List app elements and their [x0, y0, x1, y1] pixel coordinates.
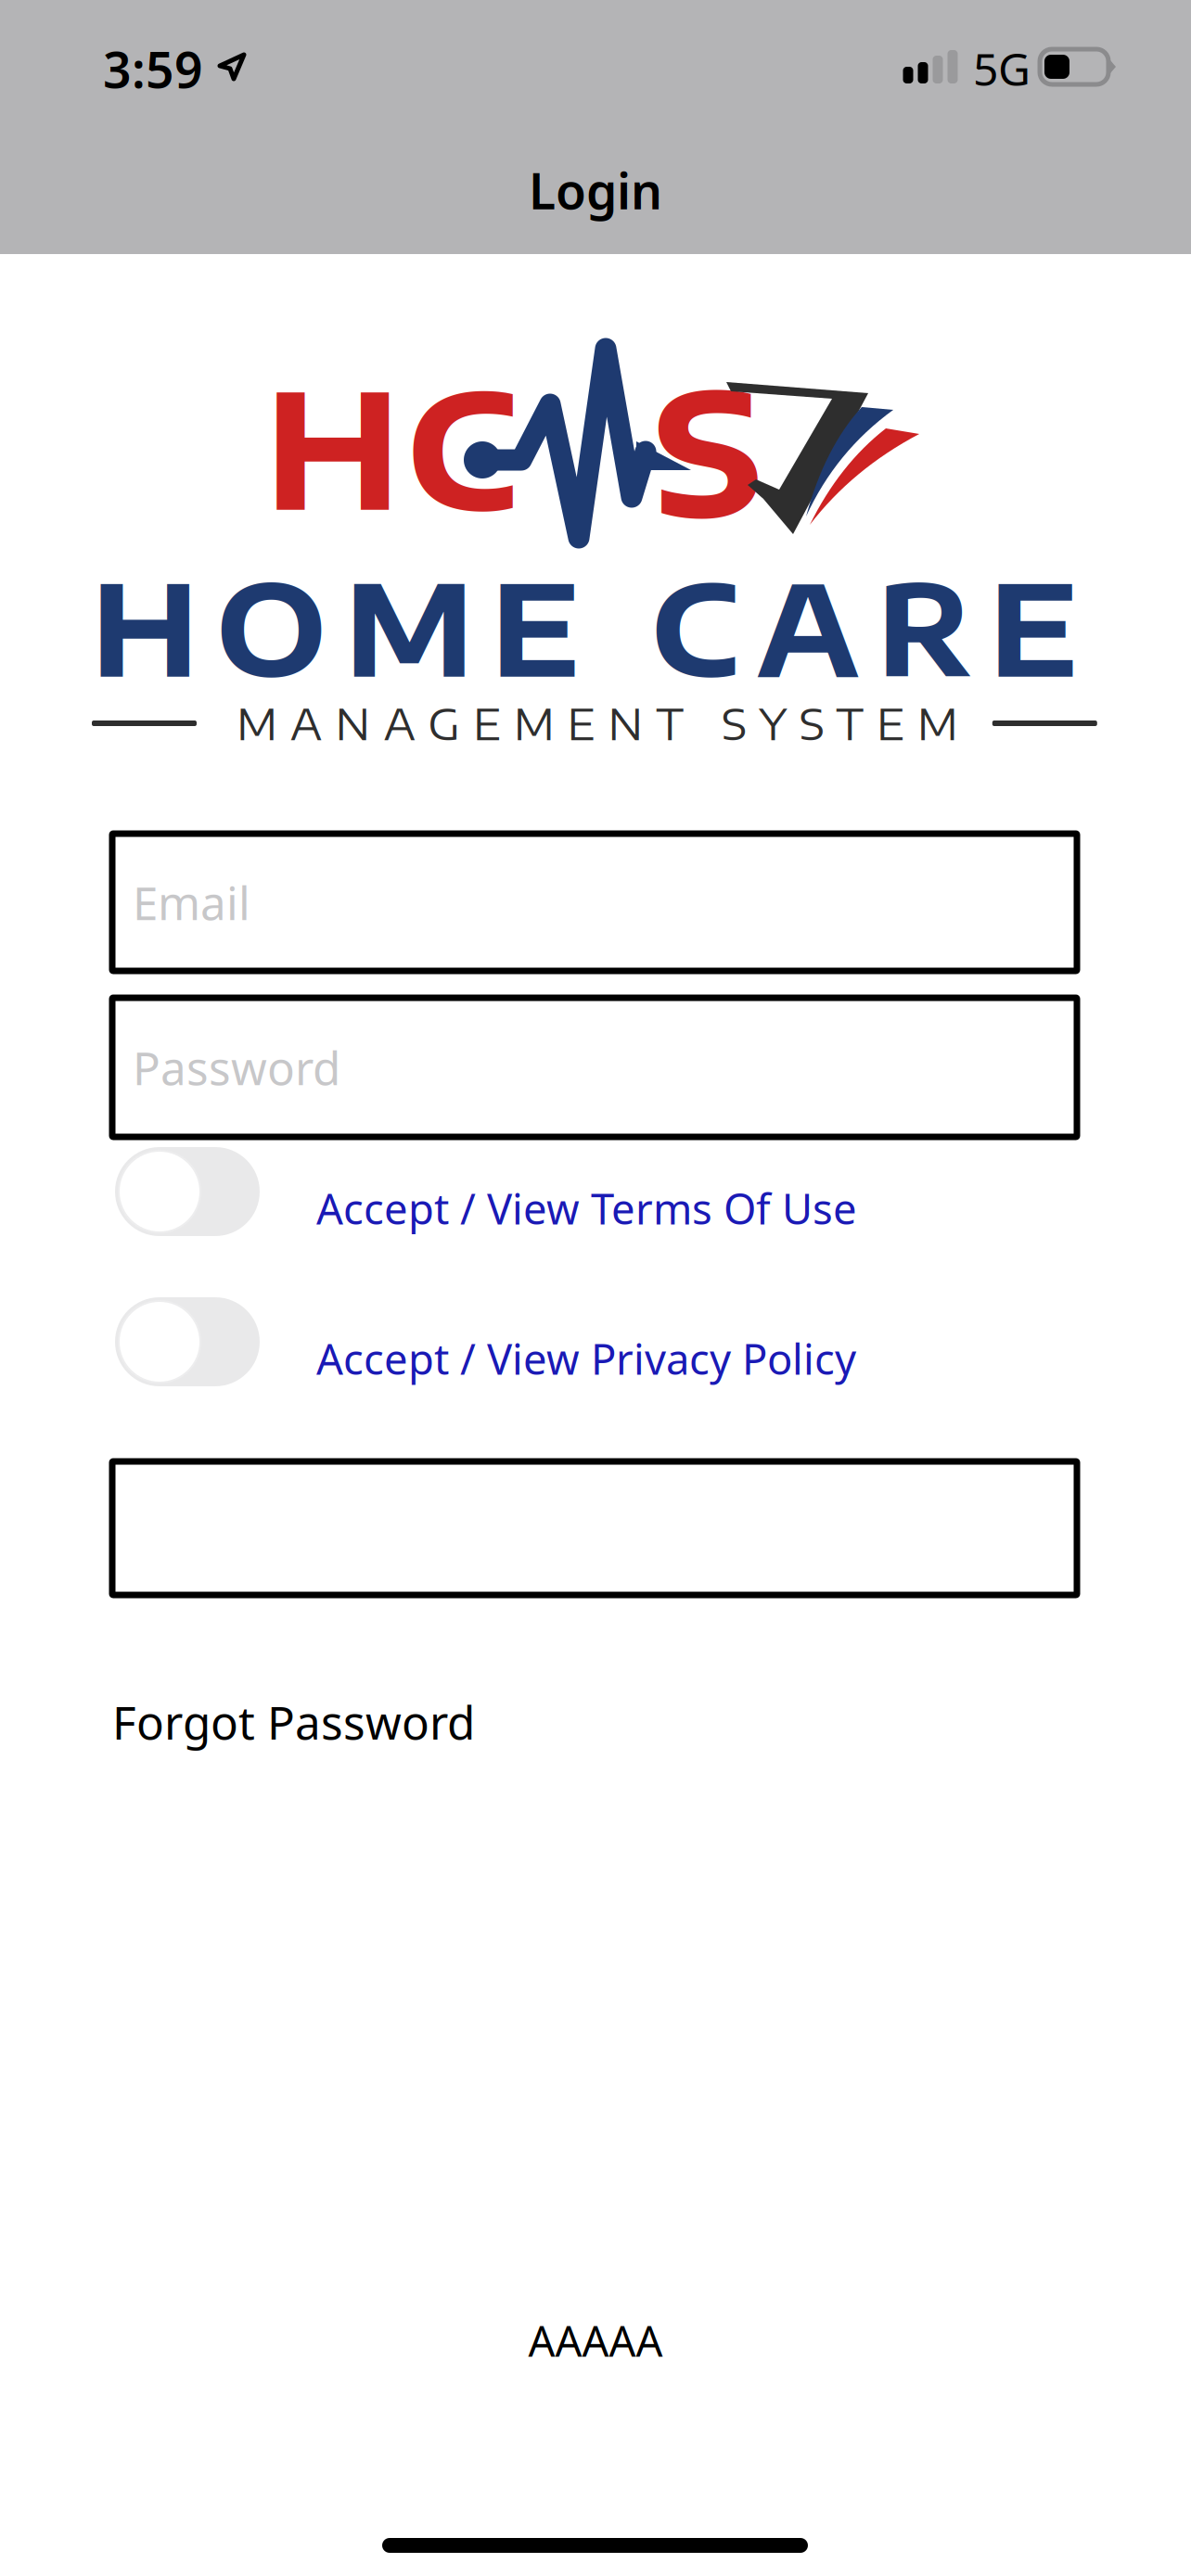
staticText: Password	[133, 1037, 340, 1098]
button[interactable]: Forgot Password	[112, 1691, 475, 1752]
staticText: Email	[133, 872, 250, 933]
staticText: 5G	[973, 39, 1031, 98]
button[interactable]: Password	[112, 998, 1077, 1137]
button[interactable]: Accept / View Privacy Policy	[316, 1297, 856, 1386]
staticText: 3:59	[103, 36, 203, 102]
button[interactable]: Login	[0, 158, 1191, 223]
staticText: HC	[264, 347, 519, 545]
staticText: Login	[529, 157, 662, 223]
button[interactable]: Email	[112, 834, 1077, 971]
staticText: S	[652, 341, 764, 555]
staticText: Accept / View Privacy Policy	[316, 1330, 856, 1386]
staticText: Forgot Password	[112, 1691, 475, 1752]
staticText: AAAAA	[528, 2313, 663, 2368]
staticText: MANAGEMENT SYSTEM	[237, 697, 958, 750]
button[interactable]: Accept / View Terms Of Use	[316, 1147, 857, 1236]
staticText: HOME CARE	[91, 548, 1079, 704]
button[interactable]: Sign in	[112, 1461, 1077, 1595]
staticText: Accept / View Terms Of Use	[316, 1180, 857, 1236]
button[interactable]: Accept / View Privacy Policy	[115, 1297, 260, 1386]
button[interactable]: Accept / View Terms Of Use	[115, 1147, 260, 1236]
